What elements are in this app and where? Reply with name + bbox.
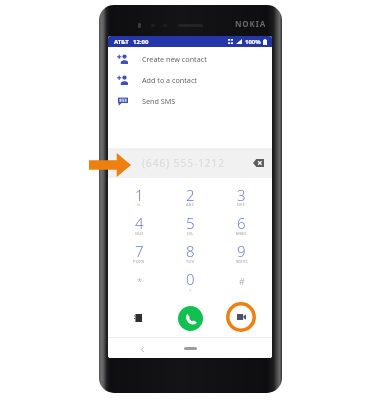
staticText: 100% <box>245 38 261 46</box>
button[interactable]: * <box>113 267 165 295</box>
staticText: DEF <box>237 202 246 207</box>
button[interactable]: 3 <box>216 182 267 211</box>
staticText: + <box>189 287 192 292</box>
button[interactable]: 0 <box>165 267 216 295</box>
staticText: 2 <box>186 185 195 205</box>
staticText: WXYZ <box>236 259 248 264</box>
button[interactable]: 6 <box>216 211 267 239</box>
button[interactable]: Add to a contact <box>108 69 272 90</box>
button[interactable]: Home <box>184 347 197 350</box>
staticText: PQRS <box>133 259 145 264</box>
staticText: JKL <box>187 231 194 236</box>
button[interactable]: Video call <box>226 302 256 332</box>
button[interactable]: Backspace <box>251 156 265 170</box>
button[interactable]: 1 <box>113 182 165 211</box>
button[interactable]: 7 <box>113 239 165 267</box>
staticText: 1 <box>135 185 144 205</box>
staticText: ABC <box>186 202 195 207</box>
staticText: 0 <box>186 269 195 289</box>
staticText: 12:00 <box>133 38 149 46</box>
button[interactable]: 2 <box>165 182 216 211</box>
staticText: * <box>137 275 142 287</box>
staticText: GHI <box>135 231 144 236</box>
staticText: 6 <box>237 213 246 233</box>
staticText: Create new contact <box>142 54 207 64</box>
button[interactable]: # <box>216 267 267 295</box>
staticText: 5 <box>186 213 195 233</box>
button[interactable]: Create new contact <box>108 48 272 69</box>
button[interactable]: Back <box>136 343 148 355</box>
button[interactable]: 8 <box>165 239 216 267</box>
button[interactable]: Contacts <box>130 310 145 325</box>
staticText: Add to a contact <box>142 75 197 85</box>
staticText: 9 <box>237 241 246 261</box>
button[interactable]: Call <box>178 306 203 331</box>
button[interactable]: 9 <box>216 239 267 267</box>
staticText: ∞ <box>137 202 141 207</box>
staticText: AT&T <box>114 38 129 46</box>
staticText: Send SMS <box>142 96 176 106</box>
staticText: 7 <box>135 241 144 261</box>
staticText: 8 <box>186 241 195 261</box>
staticText: 3 <box>237 185 246 205</box>
staticText: # <box>239 275 245 287</box>
staticText: 4 <box>135 213 144 233</box>
staticText: TUV <box>186 259 195 264</box>
button[interactable]: 5 <box>165 211 216 239</box>
staticText: (646) 555-1212 <box>142 156 226 170</box>
staticText: NOKIA <box>235 18 267 29</box>
staticText: MNO <box>236 231 247 236</box>
button[interactable]: Send SMS <box>108 90 272 111</box>
button[interactable]: 4 <box>113 211 165 239</box>
